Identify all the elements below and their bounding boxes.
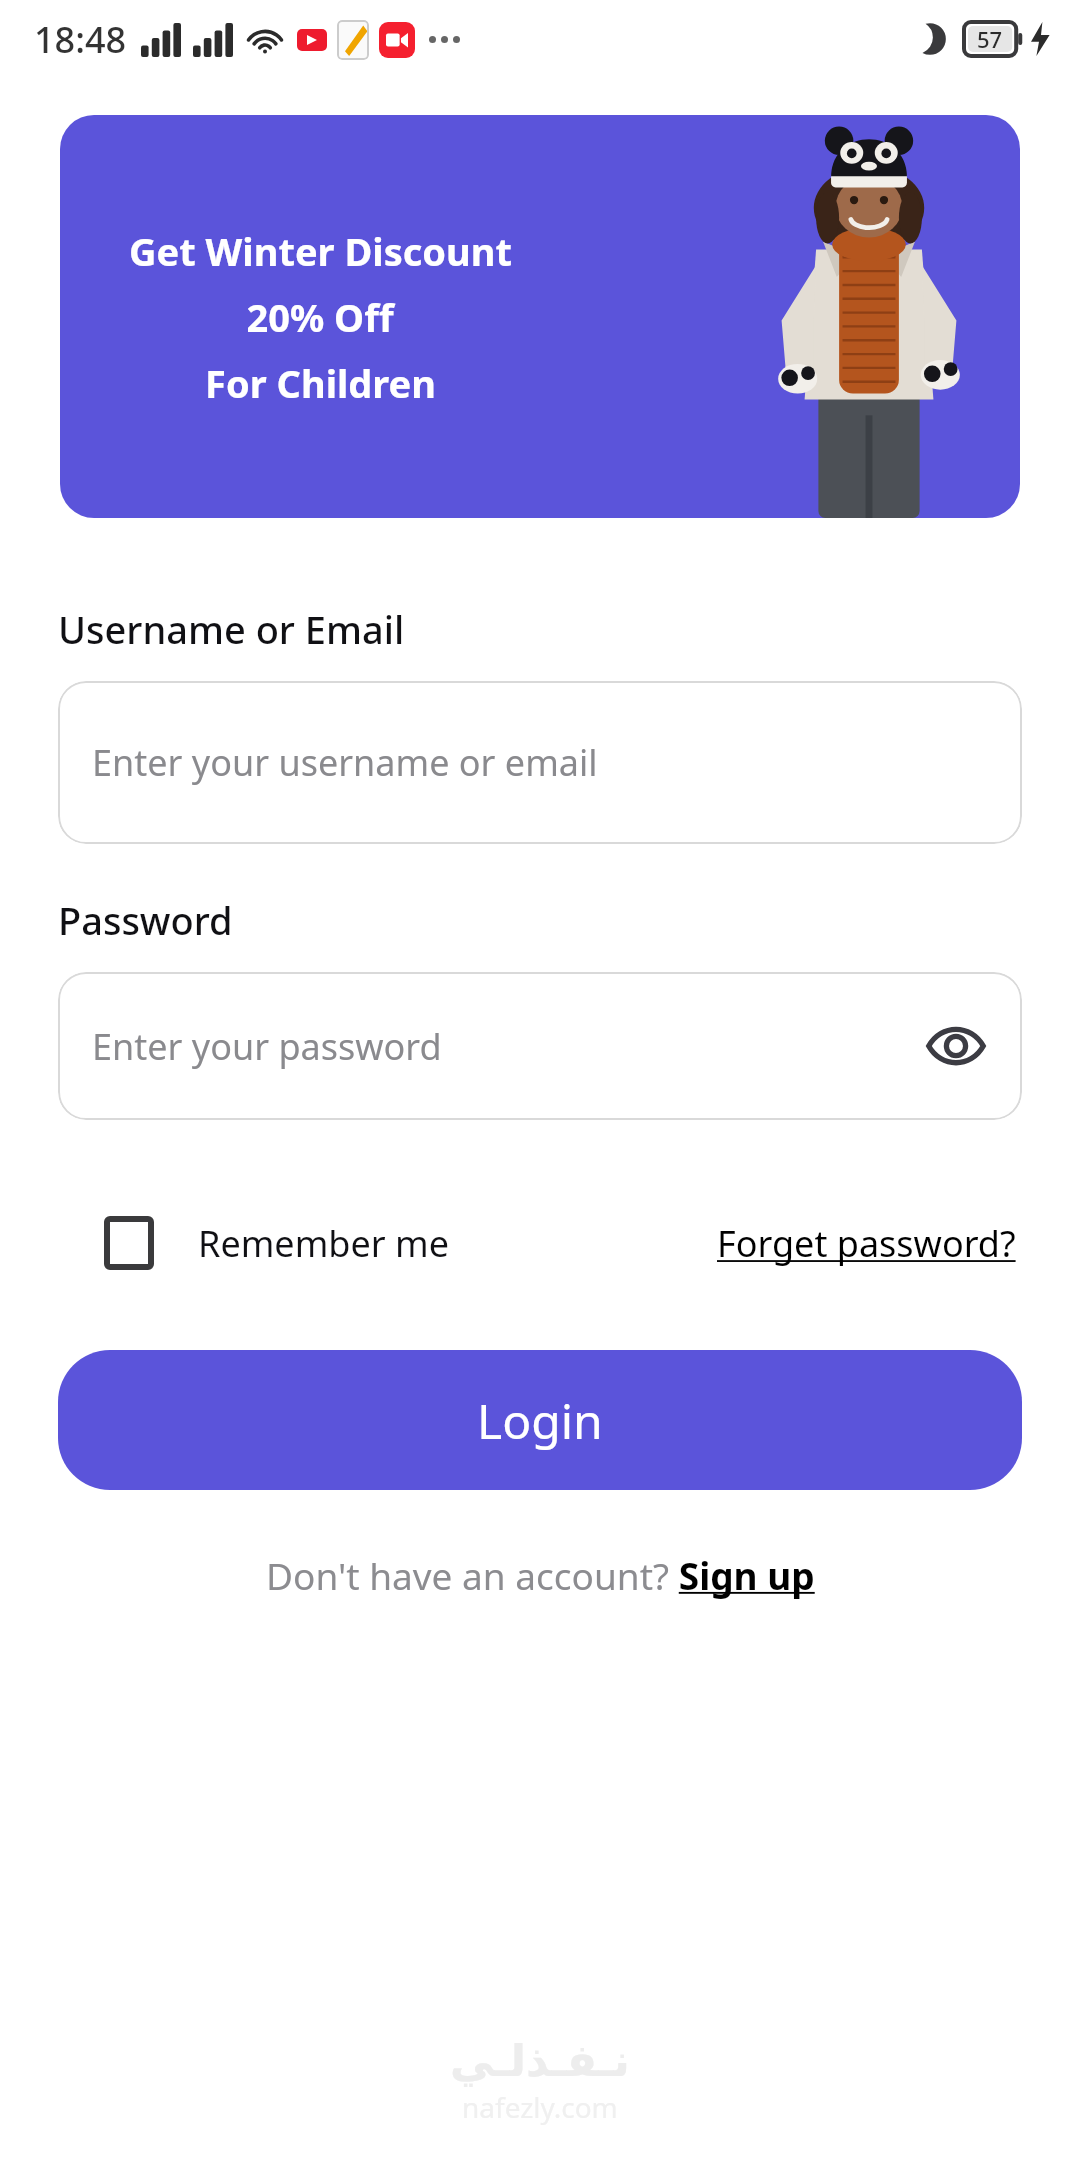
staticText: 57 — [977, 24, 1003, 54]
button[interactable]: Enter your username or email — [58, 681, 1022, 844]
button[interactable]: Login — [58, 1350, 1022, 1490]
staticText: For Children — [205, 357, 436, 409]
button[interactable]: Enter your password — [58, 972, 1022, 1120]
staticText: 18:48 — [34, 15, 127, 64]
staticText: Login — [477, 1388, 603, 1453]
staticText: نـفـذلـي — [450, 2035, 630, 2086]
staticText: Remember me — [198, 1219, 449, 1268]
button[interactable]: Get Winter Discount — [60, 115, 1020, 518]
staticText: Forget password? — [717, 1219, 1016, 1268]
staticText: Don't have an account? Sign up — [266, 1550, 815, 1600]
staticText: nafezly.com — [462, 2088, 618, 2126]
button[interactable]: Don't have an account? Sign up — [258, 1542, 823, 1608]
staticText: Get Winter Discount — [129, 225, 512, 277]
staticText: 20% Off — [246, 291, 394, 343]
staticText: Enter your username or email — [92, 738, 598, 787]
staticText: Enter your password — [92, 1022, 442, 1071]
button[interactable]: Show password — [914, 1004, 998, 1088]
staticText: Password — [58, 894, 233, 946]
button[interactable]: Forget password? — [711, 1213, 1022, 1274]
button[interactable]: Remember me — [58, 1210, 457, 1276]
staticText: Username or Email — [58, 603, 405, 655]
